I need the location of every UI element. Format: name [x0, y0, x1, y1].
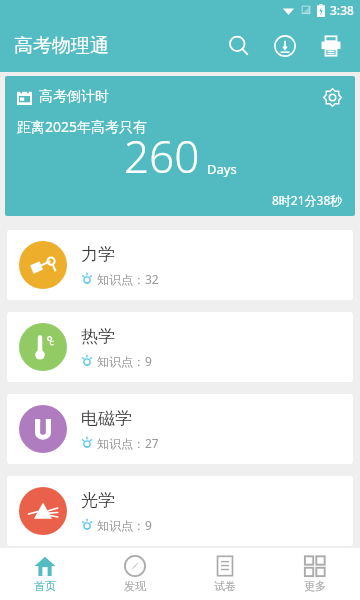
button[interactable]: 高考倒计时 [5, 76, 355, 216]
button[interactable]: Print [308, 23, 354, 69]
button[interactable]: 首页 [0, 548, 90, 600]
button[interactable]: 热学 [7, 312, 353, 382]
staticText: 光学 [81, 490, 115, 511]
staticText: 知识点：32 [97, 271, 159, 287]
staticText: 距离2025年高考只有 [17, 117, 148, 136]
staticText: 知识点：9 [97, 517, 152, 533]
staticText: 热学 [81, 326, 115, 347]
staticText: 3:38 [330, 2, 354, 18]
button[interactable]: 发现 [90, 548, 180, 600]
button[interactable]: Settings [317, 82, 347, 112]
button[interactable]: Download [262, 23, 308, 69]
button[interactable]: 力学 [7, 230, 353, 300]
staticText: 高考倒计时 [39, 88, 109, 106]
button[interactable]: 电磁学 [7, 394, 353, 464]
staticText: 高考物理通 [14, 34, 109, 58]
staticText: 试卷 [214, 579, 236, 593]
staticText: 知识点：9 [97, 353, 152, 369]
staticText: 发现 [124, 579, 146, 593]
button[interactable]: 试卷 [180, 548, 270, 600]
staticText: 知识点：27 [97, 435, 159, 451]
staticText: Days [207, 160, 237, 178]
staticText: 8时21分38秒 [272, 192, 343, 208]
staticText: 更多 [304, 579, 326, 593]
button[interactable]: Search [216, 23, 262, 69]
staticText: 电磁学 [81, 408, 132, 429]
staticText: 力学 [81, 244, 115, 265]
staticText: 首页 [34, 579, 56, 593]
button[interactable]: 更多 [270, 548, 360, 600]
staticText: 260 [124, 126, 200, 186]
button[interactable]: 光学 [7, 476, 353, 546]
